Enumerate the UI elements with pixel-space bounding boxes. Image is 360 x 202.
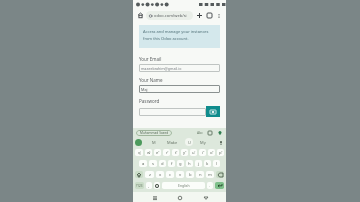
staticText: ,	[148, 183, 150, 188]
staticText: ?123	[136, 184, 143, 188]
button[interactable]: Recents	[150, 193, 159, 202]
staticText: 4	[167, 149, 169, 152]
button[interactable]: 4	[163, 149, 170, 156]
staticText: c	[169, 172, 172, 178]
button[interactable]: l	[213, 160, 220, 167]
staticText: r	[166, 150, 168, 156]
staticText: w	[147, 150, 151, 156]
button[interactable]: m	[206, 171, 214, 178]
button[interactable]: n	[196, 171, 204, 178]
button[interactable]: ?123	[135, 182, 144, 189]
button[interactable]: Home	[175, 193, 184, 202]
button[interactable]: 5	[172, 149, 179, 156]
button[interactable]: Emoji	[135, 139, 142, 146]
staticText: l	[216, 161, 218, 167]
button[interactable]: 6	[181, 149, 188, 156]
staticText: 3	[158, 149, 160, 152]
staticText: Maj	[141, 87, 148, 92]
button[interactable]: .	[207, 182, 213, 189]
button[interactable]: a	[139, 160, 147, 167]
staticText: v	[179, 172, 182, 178]
staticText: q	[138, 150, 141, 156]
button[interactable]: Shift	[135, 171, 143, 178]
button[interactable]: Tabs	[205, 11, 214, 20]
staticText: s	[152, 161, 155, 167]
button[interactable]: Maj	[139, 85, 220, 93]
button[interactable]: g	[177, 160, 184, 167]
staticText: 8	[203, 149, 205, 152]
staticText: 1	[140, 149, 142, 152]
staticText: k	[206, 161, 209, 167]
staticText: M	[152, 140, 156, 145]
staticText: u	[192, 150, 195, 156]
button[interactable]: Backspace	[216, 171, 224, 178]
button[interactable]: z	[145, 171, 154, 178]
staticText: h	[188, 161, 191, 167]
button[interactable]: 9	[208, 149, 215, 156]
button[interactable]: 0	[217, 149, 224, 156]
staticText: 0	[221, 149, 223, 152]
button[interactable]: b	[186, 171, 194, 178]
button[interactable]	[139, 108, 206, 116]
staticText: 6	[185, 149, 187, 152]
button[interactable]: U	[185, 138, 193, 146]
button[interactable]: 8	[199, 149, 206, 156]
button[interactable]: Clipboard	[207, 130, 213, 136]
button[interactable]: 7	[190, 149, 197, 156]
staticText: f	[171, 161, 173, 167]
staticText: d	[161, 161, 164, 167]
button[interactable]: ,	[146, 182, 152, 189]
button[interactable]: 2	[145, 149, 152, 156]
button[interactable]: 1	[135, 149, 143, 156]
staticText: Password	[139, 98, 160, 104]
staticText: x	[159, 172, 162, 178]
button[interactable]: Voice input	[217, 139, 224, 146]
staticText: i	[202, 150, 204, 156]
staticText: .	[209, 183, 211, 188]
button[interactable]: s	[149, 160, 157, 167]
staticText: odoo.com/web/si	[154, 13, 187, 18]
button[interactable]: Enter	[215, 182, 224, 189]
staticText: English	[178, 183, 190, 188]
button[interactable]: New tab	[195, 11, 204, 20]
button[interactable]: k	[204, 160, 211, 167]
button[interactable]: Make	[167, 140, 178, 145]
staticText: a	[142, 161, 145, 167]
button[interactable]: c	[166, 171, 174, 178]
staticText: m	[208, 172, 212, 178]
staticText: U	[188, 140, 191, 145]
staticText: j	[198, 161, 200, 167]
button[interactable]: f	[168, 160, 175, 167]
button[interactable]: Settings	[154, 182, 160, 189]
staticText: g	[179, 161, 182, 167]
staticText: 2	[149, 149, 151, 152]
button[interactable]: odoo.com/web/si	[146, 11, 193, 20]
button[interactable]: English	[162, 182, 205, 189]
staticText: Muhammad Saeed	[140, 131, 169, 135]
staticText: z	[149, 172, 151, 178]
staticText: 5	[176, 149, 178, 152]
staticText: o	[210, 150, 213, 156]
staticText: t	[175, 150, 177, 156]
staticText: b	[189, 172, 192, 178]
button[interactable]: Location	[217, 130, 223, 136]
button[interactable]: v	[176, 171, 184, 178]
staticText: Access and manage your instances from th…	[143, 29, 216, 41]
staticText: e	[156, 150, 159, 156]
button[interactable]: h	[186, 160, 193, 167]
button[interactable]: My	[200, 140, 206, 145]
staticText: y	[183, 150, 186, 156]
staticText: 9	[212, 149, 214, 152]
button[interactable]: Home	[136, 11, 145, 20]
staticText: Your Email	[139, 56, 162, 62]
button[interactable]: Back	[201, 193, 210, 202]
button[interactable]: Muhammad Saeed	[136, 130, 172, 136]
button[interactable]: j	[195, 160, 202, 167]
staticText: 7	[194, 149, 196, 152]
button[interactable]: Show password	[206, 106, 220, 117]
button[interactable]: maaeebrahim@gmail.io	[139, 64, 220, 72]
button[interactable]: 3	[154, 149, 161, 156]
button[interactable]: x	[156, 171, 164, 178]
button[interactable]: More options	[215, 12, 223, 20]
button[interactable]: d	[159, 160, 166, 167]
